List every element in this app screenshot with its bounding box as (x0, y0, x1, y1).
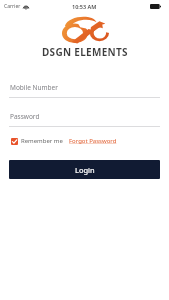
other: Battery (150, 4, 161, 9)
staticText: Forgot Password (69, 137, 117, 145)
button[interactable]: Forgot Password (68, 135, 118, 147)
button[interactable]: Password (0, 109, 169, 127)
button[interactable]: Login (9, 160, 160, 179)
staticText: Login (75, 165, 95, 175)
button[interactable]: Remember me checkbox (10, 135, 64, 147)
staticText: DSGN ELEMENTS (42, 45, 128, 59)
staticText: Password (10, 112, 40, 121)
staticText: Carrier (4, 3, 21, 10)
other: DSGN Elements logo (61, 15, 109, 43)
staticText: Mobile Number (10, 83, 58, 92)
button[interactable]: Mobile Number (0, 80, 169, 98)
staticText: 10:53 AM (72, 3, 97, 10)
staticText: Remember me (21, 137, 63, 145)
other: Remember me checkbox (11, 138, 18, 145)
other: Wi-Fi (23, 4, 29, 10)
